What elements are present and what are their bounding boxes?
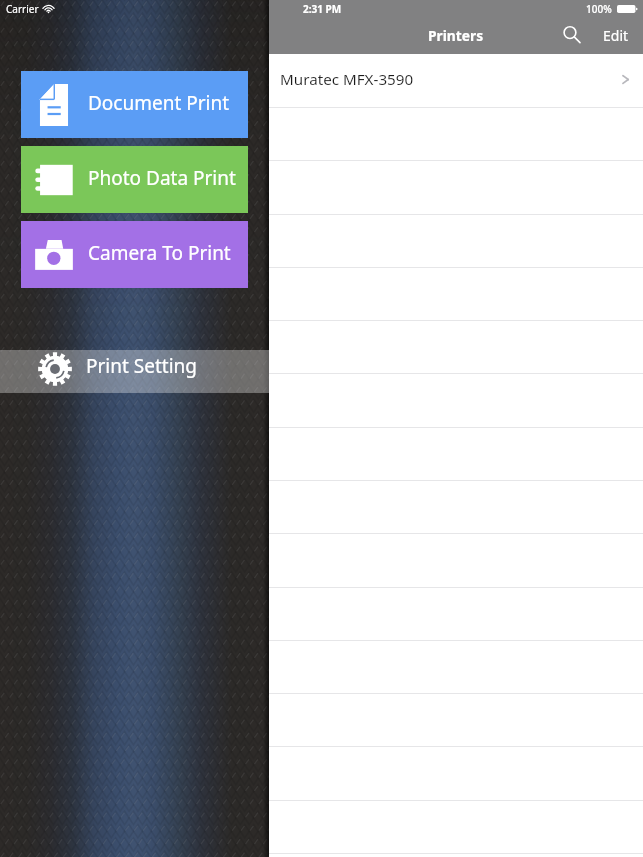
- staticText: Edit: [603, 26, 629, 44]
- button[interactable]: [269, 372, 643, 425]
- button[interactable]: [269, 213, 643, 266]
- button[interactable]: Photo Data Print: [21, 146, 248, 213]
- staticText: 100%: [586, 2, 612, 16]
- button[interactable]: Muratec MFX-3590: [269, 54, 643, 107]
- button[interactable]: [269, 796, 643, 849]
- staticText: Camera To Print: [88, 240, 231, 266]
- button[interactable]: [269, 531, 643, 584]
- staticText: Print Setting: [86, 353, 197, 379]
- staticText: 2:31 PM: [303, 2, 342, 16]
- button[interactable]: Print Setting: [0, 350, 269, 393]
- button[interactable]: [269, 849, 643, 857]
- button[interactable]: [269, 107, 643, 160]
- staticText: Carrier: [6, 2, 39, 16]
- button[interactable]: [269, 478, 643, 531]
- button[interactable]: [269, 319, 643, 372]
- button[interactable]: [269, 584, 643, 637]
- button[interactable]: Search: [553, 17, 589, 51]
- button[interactable]: [269, 743, 643, 796]
- staticText: Document Print: [88, 90, 230, 116]
- button[interactable]: [269, 690, 643, 743]
- button[interactable]: Document Print: [21, 71, 248, 138]
- button[interactable]: Edit: [592, 18, 640, 52]
- button[interactable]: Camera To Print: [21, 221, 248, 288]
- button[interactable]: [269, 425, 643, 478]
- staticText: Printers: [428, 26, 484, 45]
- staticText: Muratec MFX-3590: [280, 69, 414, 90]
- button[interactable]: [269, 637, 643, 690]
- button[interactable]: [269, 160, 643, 213]
- staticText: Photo Data Print: [88, 165, 236, 191]
- button[interactable]: [269, 266, 643, 319]
